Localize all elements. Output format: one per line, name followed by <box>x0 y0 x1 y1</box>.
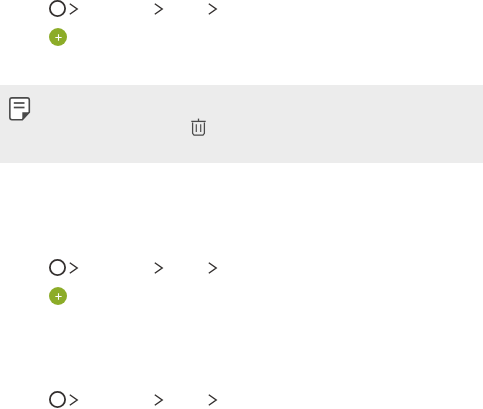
button[interactable]: Add item <box>49 28 67 46</box>
button[interactable]: Delete <box>191 118 206 136</box>
button[interactable]: Open note <box>0 85 483 163</box>
button[interactable]: Add item <box>49 287 67 305</box>
button[interactable]: Open note <box>9 97 30 120</box>
button[interactable] <box>0 391 483 408</box>
button[interactable]: Add item <box>0 259 483 305</box>
button[interactable]: Add item <box>0 0 483 46</box>
